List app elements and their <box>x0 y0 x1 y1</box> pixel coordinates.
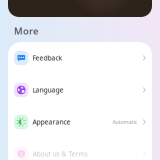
staticText: Language <box>32 86 63 94</box>
staticText: Automatic <box>113 118 138 126</box>
button[interactable]: Feedback <box>8 42 152 74</box>
staticText: Appearance <box>32 118 70 126</box>
staticText: Feedback <box>32 54 62 62</box>
button[interactable]: Language <box>8 74 152 106</box>
staticText: About us & Terms <box>32 150 87 158</box>
button[interactable]: Appearance <box>8 106 152 138</box>
button[interactable]: About us & Terms <box>8 138 152 160</box>
staticText: More <box>14 25 38 37</box>
